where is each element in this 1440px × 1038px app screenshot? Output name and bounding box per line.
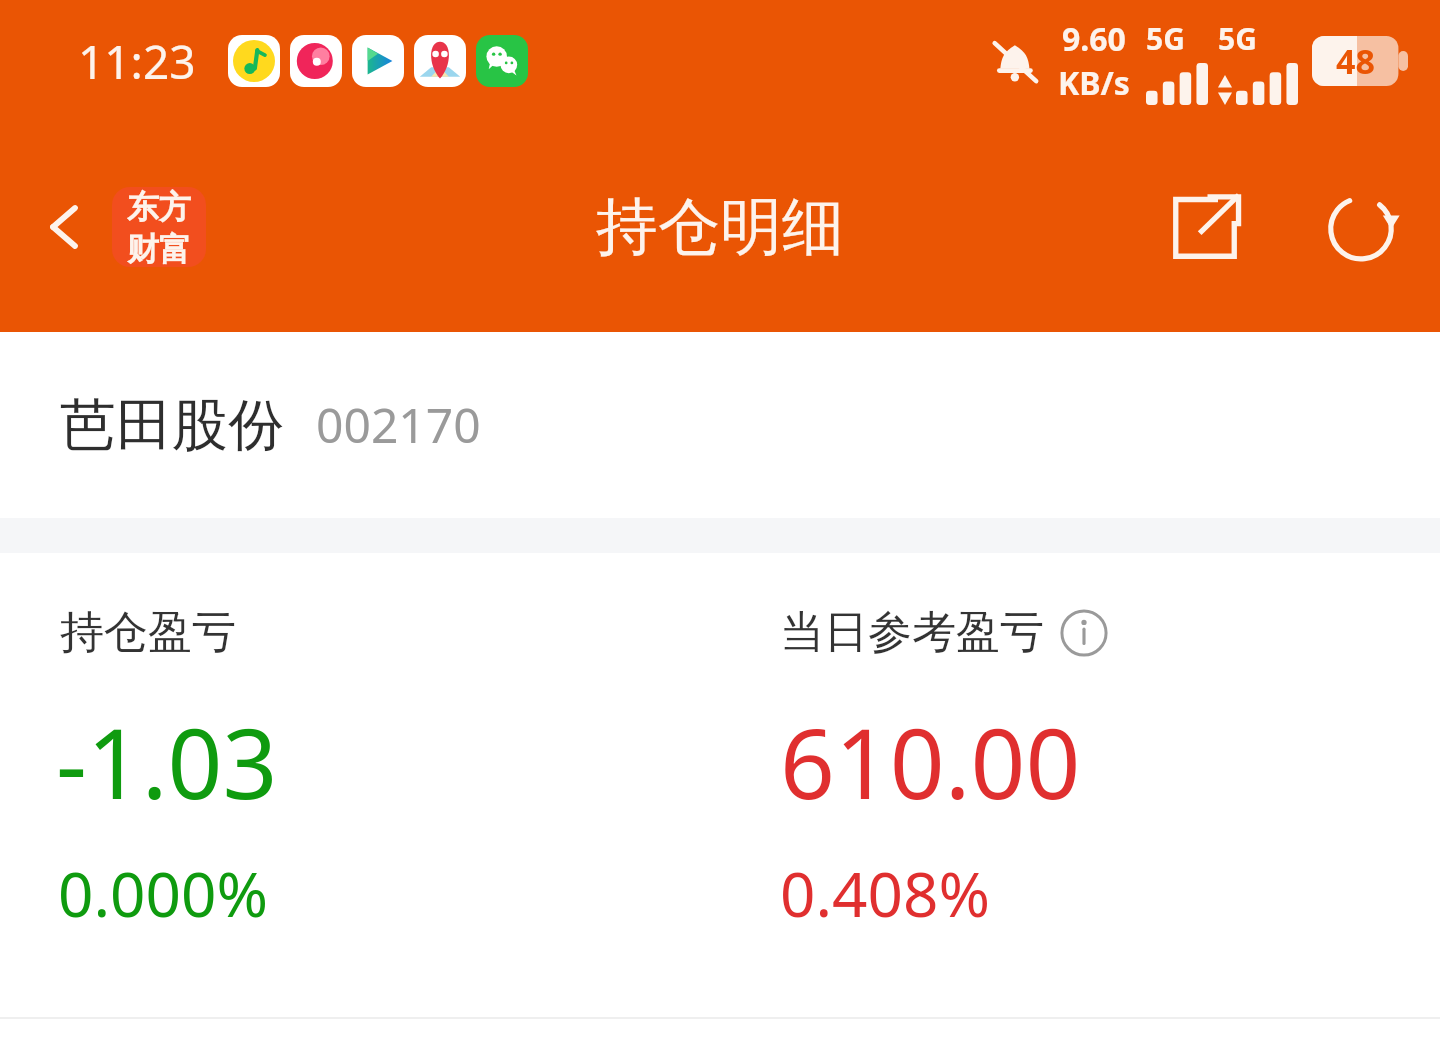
staticText: -1.03 [56,696,278,827]
staticText: 持仓盈亏 [60,605,236,660]
staticText: 5G [1218,18,1257,59]
button[interactable]: 返回 [22,184,108,270]
button[interactable]: 分享 [1146,168,1264,286]
staticText: 0.000% [58,851,268,935]
button[interactable]: 东方财富 [112,187,206,267]
staticText: 002170 [316,392,481,457]
staticText: 芭田股份 [60,390,284,461]
staticText: 0.408% [780,851,990,935]
button[interactable]: 刷新 [1306,172,1416,282]
button[interactable]: 说明 [1058,607,1110,659]
staticText: 11:23 [78,30,196,93]
staticText: 610.00 [780,696,1081,827]
button[interactable]: 芭田股份 [0,332,1440,518]
staticText: 财富 [127,229,191,267]
staticText: 持仓明细 [596,188,844,266]
staticText: KB/s [1058,61,1130,105]
staticText: 当日参考盈亏 [780,605,1044,660]
staticText: 东方 [127,187,191,227]
staticText: 48 [1336,38,1375,84]
staticText: 5G [1146,18,1185,59]
staticText: 9.60 [1062,17,1126,61]
